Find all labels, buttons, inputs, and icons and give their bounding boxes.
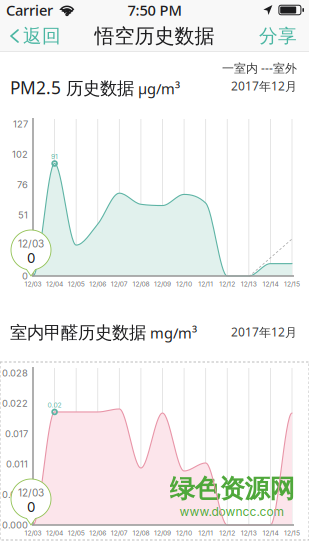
staticText: 51: [18, 210, 28, 221]
staticText: 25: [16, 240, 28, 251]
staticText: 分享: [259, 24, 297, 47]
staticText: 91: [51, 152, 58, 161]
staticText: 12/07: [111, 280, 128, 288]
staticText: 12/12: [219, 529, 235, 537]
staticText: 102: [12, 149, 28, 160]
staticText: 0.028: [2, 367, 28, 379]
staticText: 一室内 ---室外: [222, 60, 297, 76]
staticText: 12/09: [154, 280, 171, 288]
staticText: 12/08: [132, 280, 149, 288]
staticText: 127: [13, 118, 28, 130]
staticText: 12/05: [68, 529, 85, 537]
staticText: 2017年12月: [231, 78, 297, 94]
staticText: 12/07: [111, 529, 128, 537]
staticText: 0.017: [5, 428, 28, 439]
staticText: 0: [22, 270, 28, 282]
staticText: 悟空历史数据: [94, 24, 214, 48]
staticText: 7:50 PM: [127, 0, 181, 20]
staticText: 12/03: [24, 280, 41, 288]
staticText: 12/04: [46, 529, 63, 537]
staticText: Carrier: [6, 0, 53, 20]
staticText: 12/05: [68, 280, 85, 288]
staticText: 12/03: [18, 487, 44, 499]
staticText: 0.000: [2, 519, 28, 531]
staticText: 12/10: [176, 280, 192, 288]
staticText: 0.006: [2, 489, 28, 500]
staticText: PM2.5 历史数据: [10, 76, 134, 99]
button[interactable]: 分享: [249, 20, 309, 52]
staticText: 12/14: [262, 529, 278, 537]
staticText: mg/m³: [150, 323, 197, 342]
staticText: 0: [27, 499, 35, 515]
staticText: 76: [17, 179, 28, 190]
staticText: 12/06: [89, 280, 106, 288]
staticText: 绿色资源网: [169, 473, 294, 504]
staticText: 12/12: [219, 280, 235, 288]
staticText: 0: [27, 250, 35, 266]
staticText: 12/08: [132, 529, 149, 537]
staticText: 12/06: [89, 529, 106, 537]
staticText: 12/15: [284, 529, 300, 537]
staticText: 0.02: [48, 401, 62, 409]
staticText: 0.011: [6, 459, 28, 470]
staticText: 12/10: [176, 529, 192, 537]
staticText: 12/11: [198, 529, 213, 537]
staticText: 12/14: [262, 280, 278, 288]
staticText: 12/11: [198, 280, 213, 288]
staticText: 室内甲醛历史数据: [10, 322, 146, 343]
staticText: 2017年12月: [231, 324, 297, 340]
staticText: 12/13: [241, 529, 257, 537]
staticText: 12/09: [154, 529, 171, 537]
button[interactable]: 返回: [0, 20, 69, 52]
staticText: 12/03: [24, 529, 41, 537]
staticText: www.downcc.com: [179, 504, 284, 519]
staticText: µg/m³: [138, 79, 180, 98]
staticText: 12/13: [241, 280, 257, 288]
staticText: 返回: [23, 24, 61, 47]
staticText: 0.022: [2, 398, 28, 409]
staticText: 12/03: [18, 238, 44, 250]
staticText: 12/04: [46, 280, 63, 288]
staticText: 12/15: [284, 280, 300, 288]
